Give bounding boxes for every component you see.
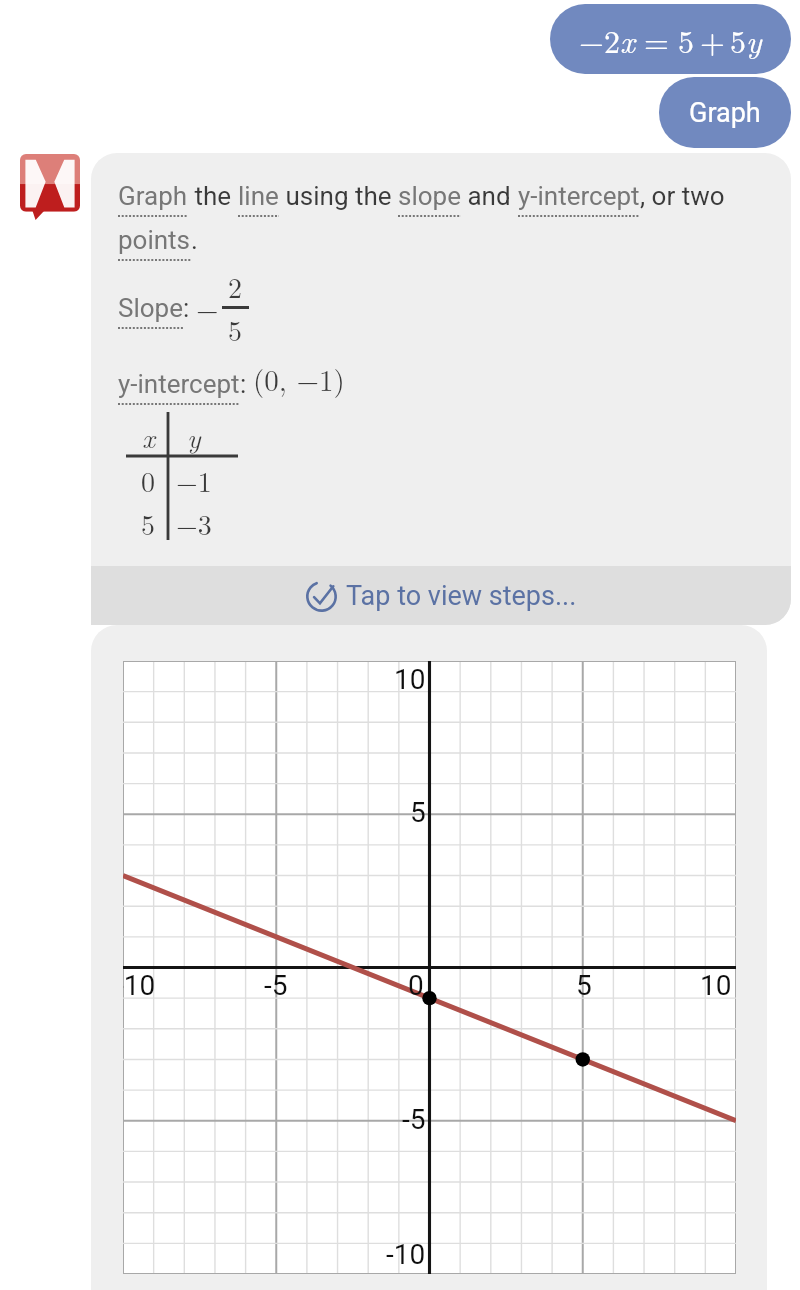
- other: Mathway: [20, 154, 80, 220]
- staticText: 2: [228, 266, 243, 306]
- staticText: 5: [410, 796, 426, 829]
- staticText: -10: [123, 969, 156, 1002]
- staticText: (0, −1): [253, 358, 345, 399]
- staticText: 0: [141, 460, 156, 500]
- staticText: −: [196, 287, 219, 328]
- staticText: 5y: [730, 17, 762, 62]
- other: View steps: [306, 581, 337, 612]
- staticText: 5: [141, 503, 156, 543]
- staticText: , or two: [640, 181, 725, 211]
- staticText: 10: [700, 969, 732, 1002]
- staticText: using the: [279, 181, 398, 211]
- staticText: 10: [394, 663, 426, 696]
- staticText: y-intercept: [118, 369, 240, 399]
- staticText: x: [142, 416, 155, 456]
- staticText: line: [238, 181, 279, 211]
- staticText: y: [187, 416, 201, 456]
- staticText: the: [188, 181, 238, 211]
- staticText: points: [118, 225, 191, 255]
- staticText: y-intercept: [518, 181, 640, 211]
- staticText: +: [700, 17, 725, 62]
- staticText: Graph: [689, 97, 761, 129]
- staticText: −1: [176, 460, 212, 500]
- staticText: Slope: [118, 293, 183, 323]
- button[interactable]: Graph: [659, 77, 791, 148]
- staticText: 0: [408, 969, 424, 1002]
- button[interactable]: −2x: [550, 4, 791, 74]
- staticText: 5: [576, 969, 592, 1002]
- staticText: :: [240, 369, 253, 399]
- staticText: slope: [398, 181, 461, 211]
- staticText: −3: [176, 503, 212, 543]
- staticText: 5: [228, 309, 243, 349]
- staticText: :: [183, 293, 196, 323]
- staticText: -5: [264, 969, 288, 1002]
- staticText: −2x: [579, 17, 635, 62]
- staticText: Tap to view steps...: [346, 580, 577, 612]
- staticText: -10: [386, 1238, 426, 1271]
- button[interactable]: View steps: [91, 566, 791, 625]
- staticText: -5: [402, 1103, 426, 1136]
- staticText: =: [644, 17, 669, 62]
- staticText: 5: [678, 17, 695, 62]
- staticText: and: [461, 181, 518, 211]
- staticText: .: [191, 225, 198, 255]
- staticText: Graph: [118, 181, 188, 211]
